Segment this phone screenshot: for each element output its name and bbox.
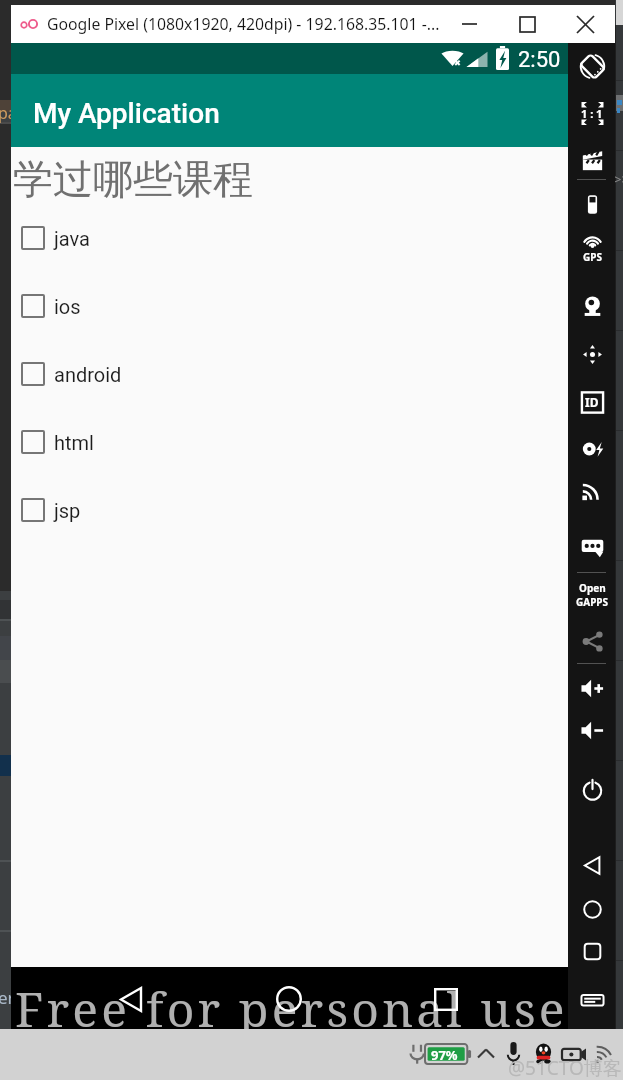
staticText: GPS: [583, 250, 602, 264]
button[interactable]: zoom: [568, 94, 615, 132]
button[interactable]: back: [568, 846, 615, 884]
button[interactable]: Close: [556, 5, 614, 43]
button[interactable]: chat: [568, 528, 615, 566]
button[interactable]: menu: [568, 981, 615, 1019]
staticText: Google Pixel (1080x1920, 420dpi) - 192.1…: [47, 13, 440, 35]
staticText: ID: [585, 394, 599, 410]
staticText: 1 : 1: [581, 106, 603, 121]
button[interactable]: dpad: [568, 335, 615, 373]
button[interactable]: Screen recorder: [562, 1045, 586, 1063]
button[interactable]: camera: [568, 141, 615, 179]
staticText: pa: [0, 102, 17, 124]
staticText: html: [54, 431, 94, 454]
staticText: android: [54, 363, 122, 386]
button[interactable]: recents: [568, 932, 615, 970]
button[interactable]: Home: [266, 976, 312, 1022]
button[interactable]: Battery: [425, 1044, 472, 1064]
staticText: ios: [54, 295, 81, 318]
staticText: GAPPS: [576, 595, 609, 609]
button[interactable]: rotate: [568, 47, 615, 85]
button[interactable]: Recents: [423, 976, 469, 1022]
button[interactable]: volume: [568, 185, 615, 223]
button[interactable]: id: [568, 383, 615, 421]
button[interactable]: gapps: [568, 576, 615, 614]
button[interactable]: Microphone: [507, 1042, 520, 1065]
button[interactable]: java: [11, 204, 568, 272]
staticText: jsp: [54, 499, 81, 522]
button[interactable]: Minimize: [440, 5, 498, 43]
staticText: >>: [614, 170, 623, 188]
staticText: 2:50: [518, 47, 561, 73]
staticText: er: [0, 986, 15, 1009]
button[interactable]: QQ: [534, 1042, 553, 1065]
button[interactable]: Maximize: [498, 5, 556, 43]
staticText: java: [54, 227, 90, 250]
staticText: My Application: [33, 97, 220, 130]
button[interactable]: html: [11, 408, 568, 476]
button[interactable]: jsp: [11, 476, 568, 544]
button[interactable]: gps: [568, 228, 615, 266]
button[interactable]: Back: [108, 976, 154, 1022]
button[interactable]: home: [568, 890, 615, 928]
button[interactable]: Power: [408, 1043, 426, 1065]
button[interactable]: power: [568, 771, 615, 809]
button[interactable]: Network: [596, 1045, 616, 1063]
button[interactable]: cam2: [568, 287, 615, 325]
button[interactable]: android: [11, 340, 568, 408]
staticText: 学过哪些课程: [13, 154, 253, 204]
button[interactable]: ios: [11, 272, 568, 340]
button[interactable]: My Application: [11, 74, 568, 147]
button[interactable]: volup: [568, 669, 615, 707]
staticText: Open: [579, 581, 606, 595]
button[interactable]: Show hidden icons: [477, 1046, 495, 1062]
button[interactable]: rec: [568, 429, 615, 467]
button[interactable]: rss: [568, 471, 615, 509]
button[interactable]: share: [568, 622, 615, 660]
staticText: Free for personal use: [15, 976, 568, 1038]
staticText: @51CTO博客: [508, 1055, 622, 1080]
button[interactable]: voldown: [568, 711, 615, 749]
staticText: 97%: [431, 1046, 458, 1064]
